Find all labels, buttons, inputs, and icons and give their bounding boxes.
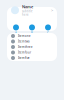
staticText: Item one [18, 34, 31, 38]
button[interactable]: Item one [7, 33, 57, 39]
staticText: Item four [18, 51, 31, 54]
button[interactable]: C [40, 24, 56, 35]
staticText: Name [22, 4, 33, 9]
staticText: C [47, 31, 49, 35]
button[interactable]: A [8, 24, 24, 35]
staticText: Item five [18, 56, 30, 60]
staticText: A [15, 31, 17, 35]
staticText: B [31, 31, 33, 35]
staticText: > [51, 8, 53, 13]
button[interactable]: B [24, 24, 40, 35]
button[interactable]: Item two [7, 39, 57, 44]
button[interactable]: Item five [7, 55, 57, 61]
button[interactable]: Item three [7, 44, 57, 50]
button[interactable]: Item four [7, 50, 57, 55]
staticText: Item three [18, 45, 33, 49]
staticText: Item two [18, 40, 30, 43]
staticText: subtitle here [22, 9, 33, 16]
